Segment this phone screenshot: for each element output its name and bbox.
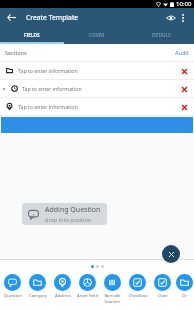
staticText: Date xyxy=(158,293,168,299)
button[interactable]: FIELDS xyxy=(0,27,64,44)
button[interactable]: Date xyxy=(150,274,175,299)
button[interactable]: Barcode Scanner xyxy=(100,274,125,304)
button[interactable]: Adding Question xyxy=(22,203,107,225)
button[interactable]: Category xyxy=(25,274,50,299)
staticText: COVER xyxy=(89,32,105,39)
staticText: Sections xyxy=(5,49,27,56)
button[interactable]: Back xyxy=(3,9,20,26)
staticText: Category xyxy=(29,293,47,299)
staticText: Adding Question xyxy=(45,205,101,215)
button[interactable]: Tap to enter information xyxy=(0,98,194,115)
button[interactable]: Tap to enter information xyxy=(0,62,194,79)
staticText: Barcode Scanner xyxy=(104,293,121,304)
button[interactable]: More options xyxy=(174,9,191,26)
staticText: FIELDS xyxy=(24,32,40,39)
button[interactable]: Remove xyxy=(176,99,192,115)
staticText: Address xyxy=(55,293,71,299)
staticText: Audit xyxy=(175,49,189,56)
staticText: DETAILS xyxy=(152,32,171,39)
staticText: Checkbox xyxy=(128,293,148,299)
staticText: Create Template xyxy=(26,13,79,22)
button[interactable]: COVER xyxy=(64,27,129,44)
button[interactable]: Audit xyxy=(175,49,189,56)
staticText: Question xyxy=(4,293,22,299)
staticText: Dr xyxy=(182,293,187,299)
staticText: Asset Field xyxy=(77,293,98,299)
button[interactable]: Address xyxy=(50,274,75,299)
button[interactable]: Dr xyxy=(175,274,194,299)
button[interactable]: DETAILS xyxy=(129,27,194,44)
button[interactable]: Question xyxy=(0,274,25,299)
button[interactable]: Remove xyxy=(176,81,192,97)
staticText: 10:00 xyxy=(176,0,192,8)
staticText: Tap to enter information xyxy=(18,103,78,110)
button[interactable]: Checkbox xyxy=(125,274,150,299)
staticText: Tap to enter information xyxy=(18,67,78,74)
staticText: Tap to enter information xyxy=(22,85,82,92)
button[interactable]: Tap to enter information xyxy=(0,80,194,97)
button[interactable]: Close xyxy=(162,245,180,263)
staticText: drop into position xyxy=(45,216,92,223)
button[interactable]: Preview xyxy=(162,9,179,26)
button[interactable]: Remove xyxy=(176,63,192,79)
button[interactable]: Asset Field xyxy=(75,274,100,299)
